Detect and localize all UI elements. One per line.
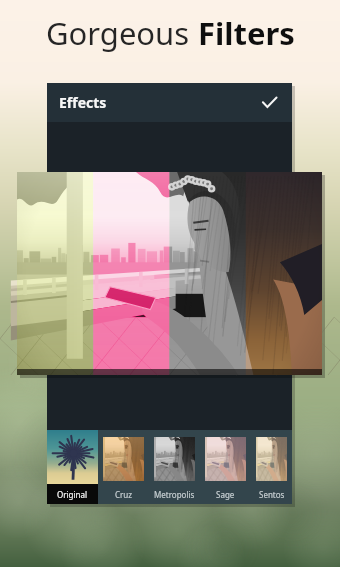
staticText: Effects — [59, 93, 107, 112]
button[interactable]: Original — [47, 430, 98, 504]
staticText: Filters — [198, 12, 295, 54]
other: Apply — [262, 95, 277, 110]
staticText: Sage — [216, 489, 235, 500]
button[interactable]: Metropolis — [149, 430, 200, 504]
button[interactable]: Effects — [47, 83, 292, 122]
staticText: Gorgeous — [46, 12, 198, 54]
button[interactable]: Cruz — [98, 430, 149, 504]
button[interactable]: Sage — [200, 430, 251, 504]
staticText: Sentos — [259, 489, 285, 500]
staticText: Metropolis — [154, 489, 195, 500]
staticText: Original — [57, 489, 88, 500]
button[interactable]: Sentos — [251, 430, 292, 504]
staticText: Cruz — [115, 489, 133, 500]
